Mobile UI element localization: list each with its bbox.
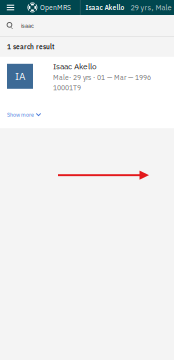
button[interactable]: IA xyxy=(0,57,174,92)
staticText: OpenMRS xyxy=(40,3,71,12)
button[interactable]: Open menu xyxy=(2,0,19,15)
staticText: 10001T9 xyxy=(53,83,81,92)
button[interactable]: Isaac Akello xyxy=(86,0,172,15)
staticText: IA xyxy=(15,70,25,83)
button[interactable]: OpenMRS xyxy=(27,0,71,15)
staticText: Isaac Akello xyxy=(86,3,125,12)
staticText: Male· 29 yrs · 01 — Mar — 1996 xyxy=(53,73,151,82)
staticText: Show more xyxy=(7,111,34,118)
staticText: 1 search result xyxy=(7,43,54,51)
staticText: isaac xyxy=(21,22,34,29)
staticText: Isaac Akello xyxy=(53,61,97,71)
button[interactable]: isaac xyxy=(0,15,174,36)
staticText: 29 yrs, Male xyxy=(131,3,172,12)
button[interactable]: Show more xyxy=(0,92,174,128)
